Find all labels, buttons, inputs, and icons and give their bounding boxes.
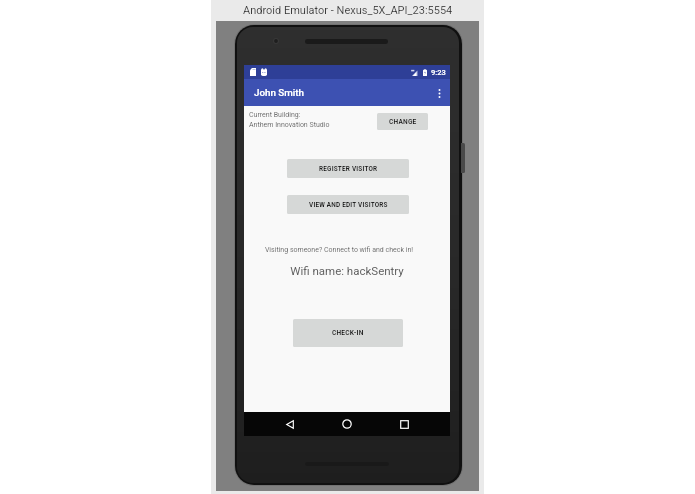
staticText: Current Building: (249, 111, 301, 119)
staticText: Visiting someone? Connect to wifi and ch… (236, 246, 442, 254)
staticText: Wifi name: hackSentry (244, 264, 450, 277)
button[interactable]: Home (336, 413, 358, 435)
button[interactable]: CHECK-IN (293, 319, 403, 347)
staticText: VIEW AND EDIT VISITORS (309, 201, 388, 209)
button[interactable]: REGISTER VISITOR (287, 159, 409, 178)
button[interactable]: Back (279, 413, 301, 435)
staticText: John Smith (254, 87, 305, 98)
staticText: 9:23 (431, 68, 446, 77)
staticText: CHECK-IN (332, 329, 364, 337)
button[interactable]: More options (428, 79, 450, 106)
staticText: CHANGE (389, 118, 417, 126)
staticText: Anthem Innovation Studio (249, 121, 330, 129)
button[interactable]: VIEW AND EDIT VISITORS (287, 195, 409, 214)
staticText: Android Emulator - Nexus_5X_API_23:5554 (243, 4, 453, 17)
button[interactable]: CHANGE (377, 113, 428, 130)
staticText: REGISTER VISITOR (319, 165, 378, 173)
button[interactable]: Recent apps (393, 413, 415, 435)
